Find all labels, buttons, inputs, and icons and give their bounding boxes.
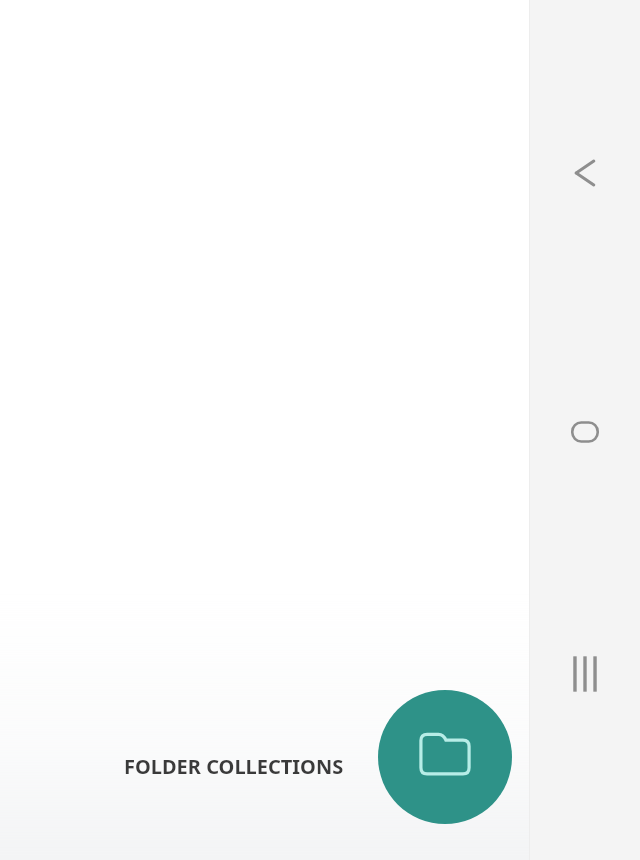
button[interactable]: Recent apps (547, 636, 623, 712)
button[interactable]: New folder (378, 690, 512, 824)
staticText: FOLDER COLLECTIONS (124, 753, 344, 780)
button[interactable]: Back (547, 135, 623, 211)
button[interactable]: Home (547, 394, 623, 470)
button[interactable]: FOLDER COLLECTIONS (124, 752, 358, 780)
